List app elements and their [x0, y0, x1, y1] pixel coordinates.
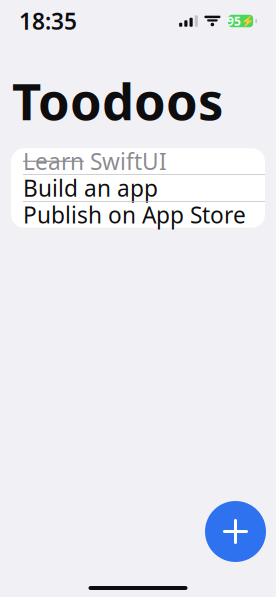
button[interactable]: Learn SwiftUI — [11, 148, 265, 174]
staticText: 95 — [227, 13, 241, 29]
staticText: Build an app — [23, 173, 158, 203]
staticText: ⚡ — [241, 15, 254, 27]
button[interactable]: Build an app — [11, 175, 265, 201]
staticText: Toodoos — [12, 67, 223, 134]
staticText: 18:35 — [19, 6, 77, 36]
staticText: Publish on App Store — [23, 200, 246, 230]
button[interactable]: Publish on App Store — [11, 202, 265, 228]
staticText: Learn SwiftUI — [23, 146, 167, 176]
button[interactable]: Add item — [205, 501, 266, 562]
